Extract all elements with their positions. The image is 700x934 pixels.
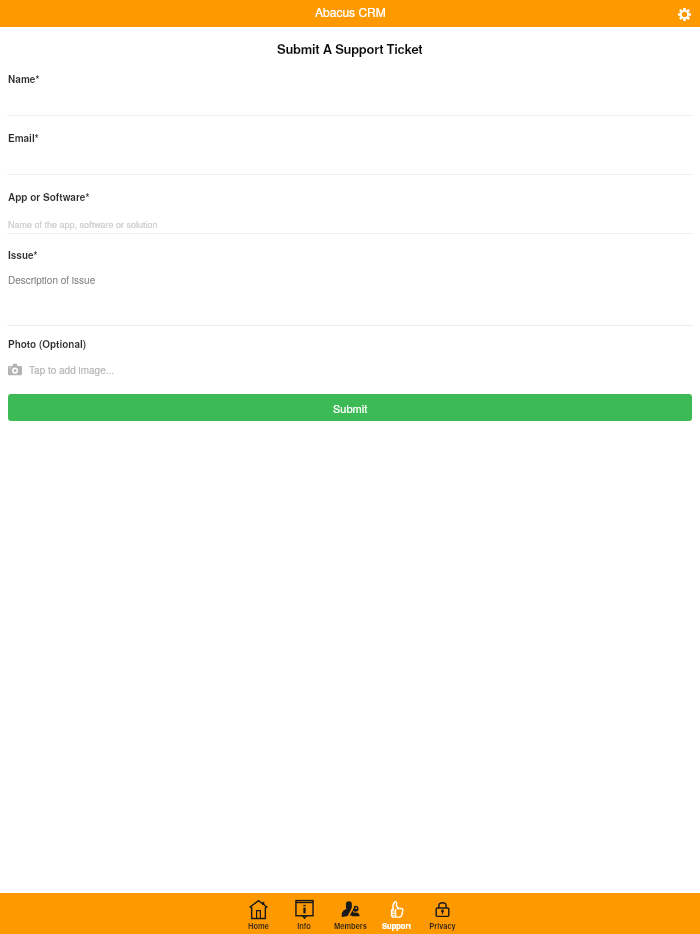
staticText: Name* [8,72,40,86]
button[interactable]: Home [235,893,281,934]
button[interactable]: App or Software* [0,182,700,234]
staticText: Tap to add image... [29,363,115,377]
button[interactable]: Privacy [419,893,465,934]
staticText: Members [334,921,367,932]
staticText: Submit [333,400,368,416]
staticText: App or Software* [8,190,90,204]
button[interactable]: Issue* [0,240,700,326]
button[interactable]: Tap to add image... [0,360,700,380]
staticText: Home [248,921,269,932]
staticText: Privacy [429,921,456,932]
button[interactable]: Settings [673,3,695,25]
staticText: Email* [8,131,39,145]
staticText: Name of the app, software or solution [8,218,158,231]
button[interactable]: Members [327,893,373,934]
staticText: Submit A Support Ticket [277,39,423,58]
button[interactable]: Email* [0,123,700,175]
staticText: Info [297,921,311,932]
staticText: Photo (Optional) [8,337,87,351]
button[interactable]: Submit [8,394,692,421]
staticText: Abacus CRM [315,3,386,20]
button[interactable]: Support [373,893,419,934]
staticText: Support [382,921,411,932]
button[interactable]: Info [281,893,327,934]
button[interactable]: Name* [0,64,700,116]
staticText: Issue* [8,248,38,262]
staticText: Description of issue [8,273,96,287]
